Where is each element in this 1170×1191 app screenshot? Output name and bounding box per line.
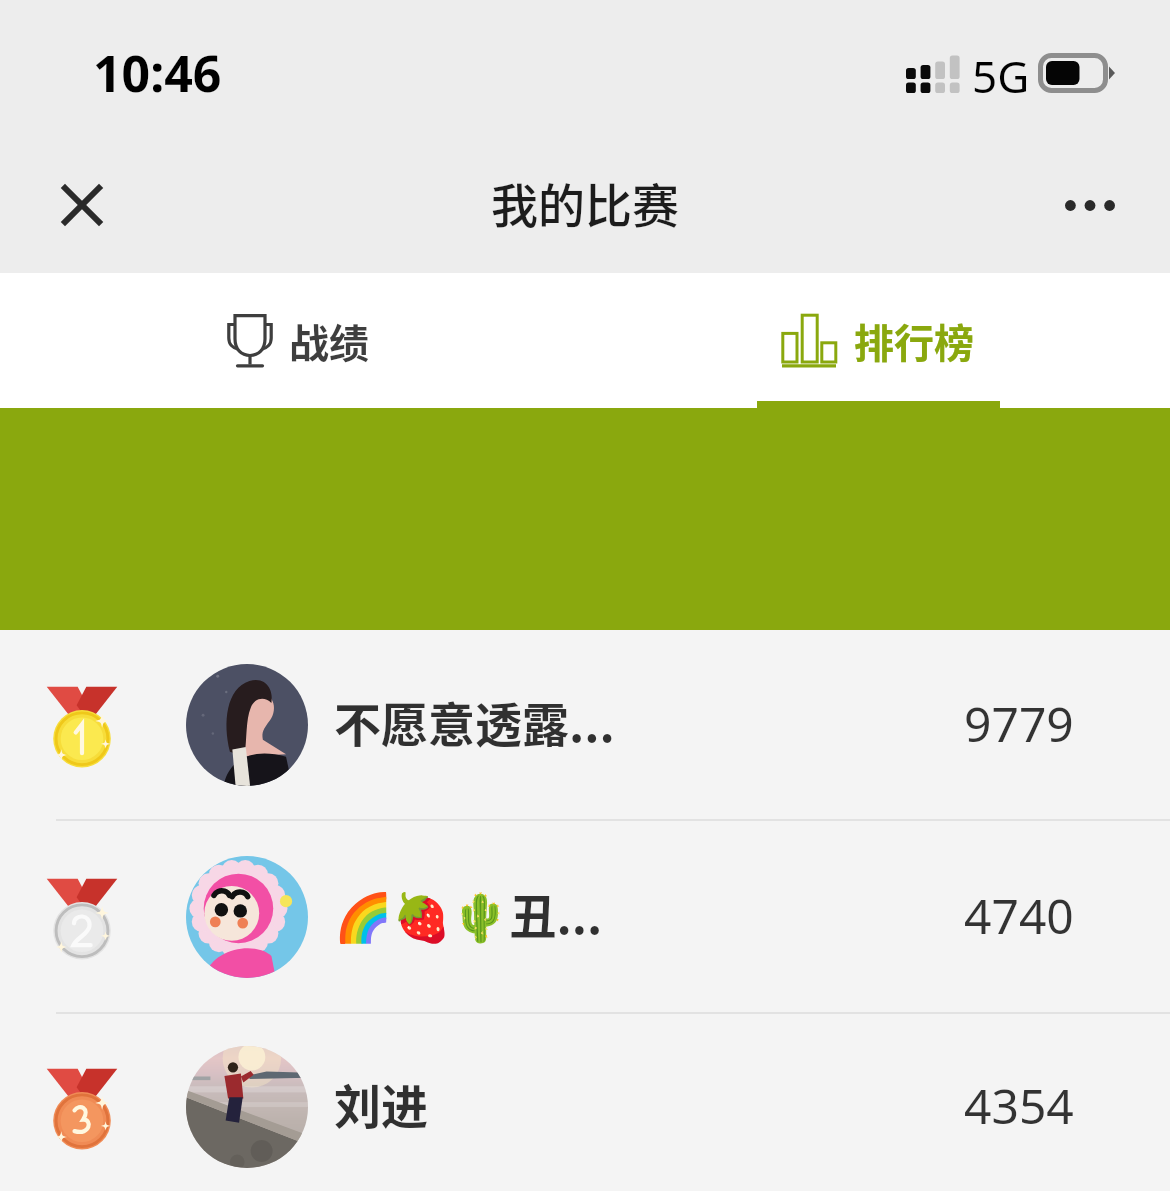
button[interactable]: 不愿意透露... — [0, 630, 1170, 819]
button[interactable]: More options — [1042, 157, 1138, 253]
button[interactable]: 🌈🍓🌵丑... — [0, 821, 1170, 1012]
staticText: 5G — [972, 46, 1030, 106]
button[interactable]: Close — [38, 161, 126, 249]
staticText: 10:46 — [93, 39, 222, 107]
staticText: 排行榜 — [854, 312, 974, 370]
staticText: 🌈🍓🌵丑... — [334, 879, 964, 947]
button[interactable]: 刘进 — [0, 1018, 1170, 1191]
staticText: 4354 — [964, 1073, 1074, 1138]
staticText: 刘进 — [334, 1069, 964, 1137]
staticText: 4740 — [964, 883, 1074, 948]
staticText: 战绩 — [289, 312, 369, 370]
staticText: 我的比赛 — [491, 168, 679, 236]
staticText: 不愿意透露... — [334, 687, 964, 755]
staticText: 9779 — [964, 691, 1074, 756]
button[interactable]: 排行榜 — [585, 273, 1170, 408]
button[interactable]: 战绩 — [0, 273, 585, 408]
